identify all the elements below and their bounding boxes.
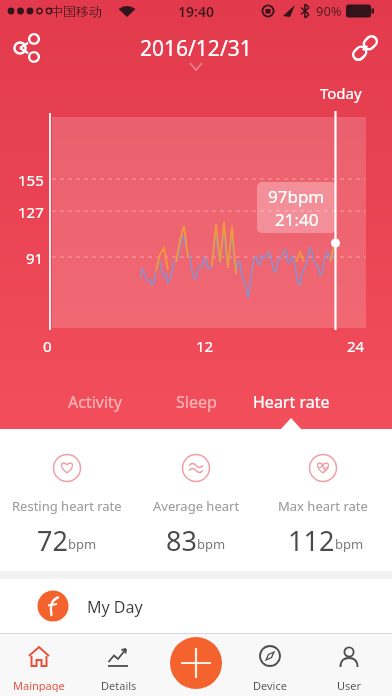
- staticText: 中国移动: [50, 3, 102, 19]
- button[interactable]: User: [318, 636, 380, 694]
- staticText: 2016/12/31: [140, 34, 252, 63]
- staticText: 0: [43, 336, 52, 354]
- staticText: 90%: [316, 2, 342, 20]
- staticText: Device: [253, 678, 287, 692]
- staticText: 12: [196, 336, 214, 354]
- staticText: Resting heart rate: [12, 497, 122, 515]
- staticText: 112: [288, 522, 335, 556]
- button[interactable]: [170, 637, 222, 689]
- staticText: Average heart: [153, 497, 240, 515]
- staticText: User: [337, 678, 362, 692]
- staticText: bpm: [197, 535, 226, 553]
- button[interactable]: Heart rate: [243, 388, 339, 416]
- button[interactable]: Sleep: [148, 388, 244, 416]
- button[interactable]: 2016/12/31: [120, 32, 272, 72]
- button[interactable]: Activity: [47, 388, 143, 416]
- staticText: bpm: [335, 535, 364, 553]
- button[interactable]: [6, 32, 48, 64]
- staticText: bpm: [68, 535, 97, 553]
- staticText: 91: [26, 248, 44, 266]
- staticText: Mainpage: [13, 678, 65, 692]
- staticText: 155: [18, 170, 44, 188]
- staticText: 127: [18, 202, 44, 220]
- staticText: 19:40: [178, 2, 214, 20]
- button[interactable]: Device: [239, 636, 301, 694]
- staticText: 21:40: [275, 208, 319, 231]
- staticText: 72: [37, 522, 68, 556]
- staticText: 83: [166, 522, 197, 556]
- button[interactable]: Mainpage: [8, 636, 70, 694]
- staticText: 97bpm: [268, 185, 325, 208]
- staticText: Details: [101, 678, 137, 692]
- staticText: Heart rate: [253, 391, 330, 413]
- staticText: My Day: [87, 596, 143, 618]
- staticText: Activity: [68, 391, 123, 413]
- staticText: Today: [320, 83, 362, 103]
- staticText: Max heart rate: [278, 497, 368, 515]
- staticText: 24: [347, 336, 365, 354]
- button[interactable]: My Day: [0, 579, 392, 633]
- button[interactable]: Details: [88, 636, 150, 694]
- button[interactable]: [346, 32, 386, 66]
- staticText: Sleep: [176, 391, 217, 413]
